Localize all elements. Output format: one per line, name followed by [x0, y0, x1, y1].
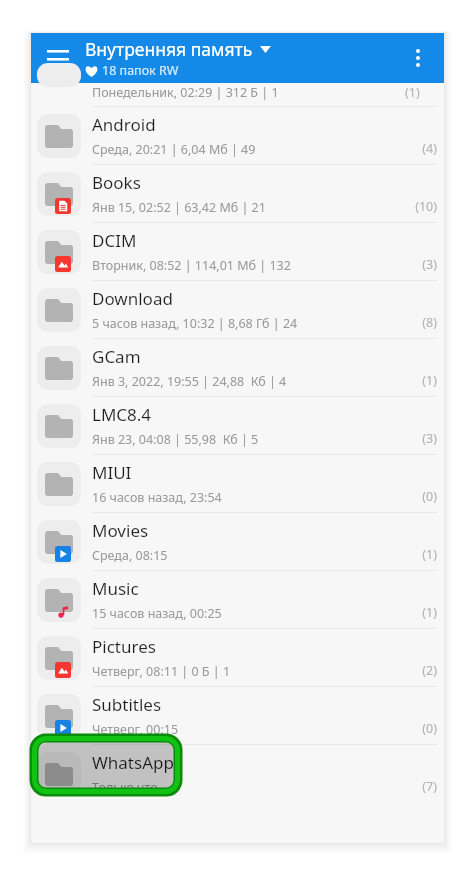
staticText: 15 часов назад, 00:25	[92, 605, 222, 622]
staticText: (8)	[387, 314, 437, 331]
staticText: Subtitles	[92, 693, 162, 716]
button[interactable]: GCam	[31, 339, 444, 397]
staticText: (3)	[387, 430, 437, 447]
button[interactable]: Movies	[31, 513, 444, 571]
staticText: (0)	[387, 720, 437, 737]
staticText: Янв 23, 04:08 | 55,98 Кб | 5	[92, 431, 259, 448]
button[interactable]: WhatsApp	[31, 745, 444, 803]
staticText: LMC8.4	[92, 403, 152, 426]
staticText: Download	[92, 287, 173, 310]
button[interactable]: Subtitles	[31, 687, 444, 745]
staticText: Среда, 20:21 | 6,04 Мб | 49	[92, 141, 256, 158]
staticText: Янв 15, 02:52 | 63,42 Мб | 21	[92, 199, 266, 216]
staticText: Четверг, 00:15	[92, 721, 179, 738]
staticText: (4)	[387, 140, 437, 157]
staticText: (7)	[387, 778, 437, 795]
button[interactable]: DCIM	[31, 223, 444, 281]
staticText: (3)	[387, 256, 437, 273]
staticText: 18 папок RW	[102, 62, 179, 79]
button[interactable]: MIUI	[31, 455, 444, 513]
staticText: GCam	[92, 345, 141, 368]
staticText: Внутренняя память	[85, 37, 253, 61]
staticText: Понедельник, 02:29 | 312 Б | 1	[92, 84, 279, 101]
staticText: MIUI	[92, 461, 132, 484]
button[interactable]: LMC8.4	[31, 397, 444, 455]
button[interactable]: Android	[31, 107, 444, 165]
staticText: WhatsApp	[92, 751, 174, 774]
staticText: (10)	[387, 198, 437, 215]
staticText: Вторник, 08:52 | 114,01 Мб | 132	[92, 257, 291, 274]
staticText: Movies	[92, 519, 149, 542]
staticText: Android	[92, 113, 156, 136]
staticText: Янв 3, 2022, 19:55 | 24,88 Кб | 4	[92, 373, 287, 390]
staticText: Только что	[92, 779, 158, 796]
staticText: Среда, 08:15	[92, 547, 168, 564]
staticText: Pictures	[92, 635, 156, 658]
staticText: Четверг, 08:11 | 0 Б | 1	[92, 663, 231, 680]
button[interactable]: Books	[31, 165, 444, 223]
button[interactable]: Download	[31, 281, 444, 339]
staticText: 5 часов назад, 10:32 | 8,68 Гб | 24	[92, 315, 298, 332]
staticText: DCIM	[92, 229, 137, 252]
button[interactable]: Внутренняя память	[85, 37, 271, 79]
button[interactable]: Music	[31, 571, 444, 629]
button[interactable]: Open navigation menu	[37, 37, 79, 79]
button[interactable]: Понедельник, 02:29 | 312 Б | 1	[31, 83, 444, 107]
button[interactable]: More options	[398, 38, 438, 78]
staticText: (1)	[387, 604, 437, 621]
staticText: Books	[92, 171, 141, 194]
staticText: (1)	[387, 372, 437, 389]
button[interactable]: Pictures	[31, 629, 444, 687]
staticText: 16 часов назад, 23:54	[92, 489, 222, 506]
staticText: (0)	[387, 488, 437, 505]
staticText: (1)	[387, 546, 437, 563]
staticText: (1)	[405, 84, 420, 101]
staticText: Music	[92, 577, 139, 600]
staticText: (2)	[387, 662, 437, 679]
